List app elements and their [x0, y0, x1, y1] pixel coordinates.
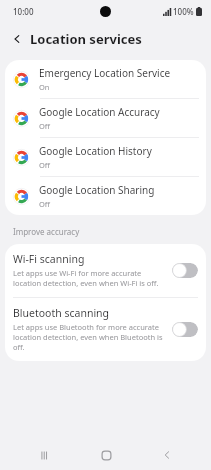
button[interactable]: Back: [150, 440, 184, 470]
button[interactable]: Google Location History: [5, 138, 206, 176]
staticText: 10:00: [13, 6, 34, 17]
button[interactable]: Bluetooth scanning: [5, 298, 206, 361]
staticText: On: [39, 82, 50, 92]
staticText: Let apps use Bluetooth for more accurate…: [13, 322, 163, 352]
staticText: 100%: [173, 6, 194, 17]
button[interactable]: Home: [89, 440, 123, 470]
button[interactable]: Google Location Sharing: [5, 177, 206, 215]
staticText: Google Location Accuracy: [39, 105, 160, 119]
button[interactable]: Emergency Location Service: [5, 60, 206, 98]
staticText: Bluetooth scanning: [13, 306, 110, 320]
staticText: Off: [39, 121, 51, 131]
button[interactable]: Wi-Fi scanning: [172, 263, 198, 278]
staticText: Location services: [30, 30, 142, 48]
staticText: Off: [39, 160, 51, 170]
staticText: Wi-Fi scanning: [13, 252, 85, 266]
staticText: Let apps use Wi-Fi for more accurate loc…: [13, 268, 159, 288]
button[interactable]: Recent apps: [27, 440, 61, 470]
staticText: Emergency Location Service: [39, 66, 171, 80]
staticText: Google Location Sharing: [39, 183, 155, 197]
button[interactable]: Google Location Accuracy: [5, 99, 206, 137]
button[interactable]: Wi-Fi scanning: [5, 244, 206, 297]
staticText: Improve accuracy: [13, 226, 80, 237]
staticText: Google Location History: [39, 144, 152, 158]
button[interactable]: Back: [6, 28, 28, 50]
staticText: Off: [39, 199, 51, 209]
button[interactable]: Bluetooth scanning: [172, 322, 198, 337]
